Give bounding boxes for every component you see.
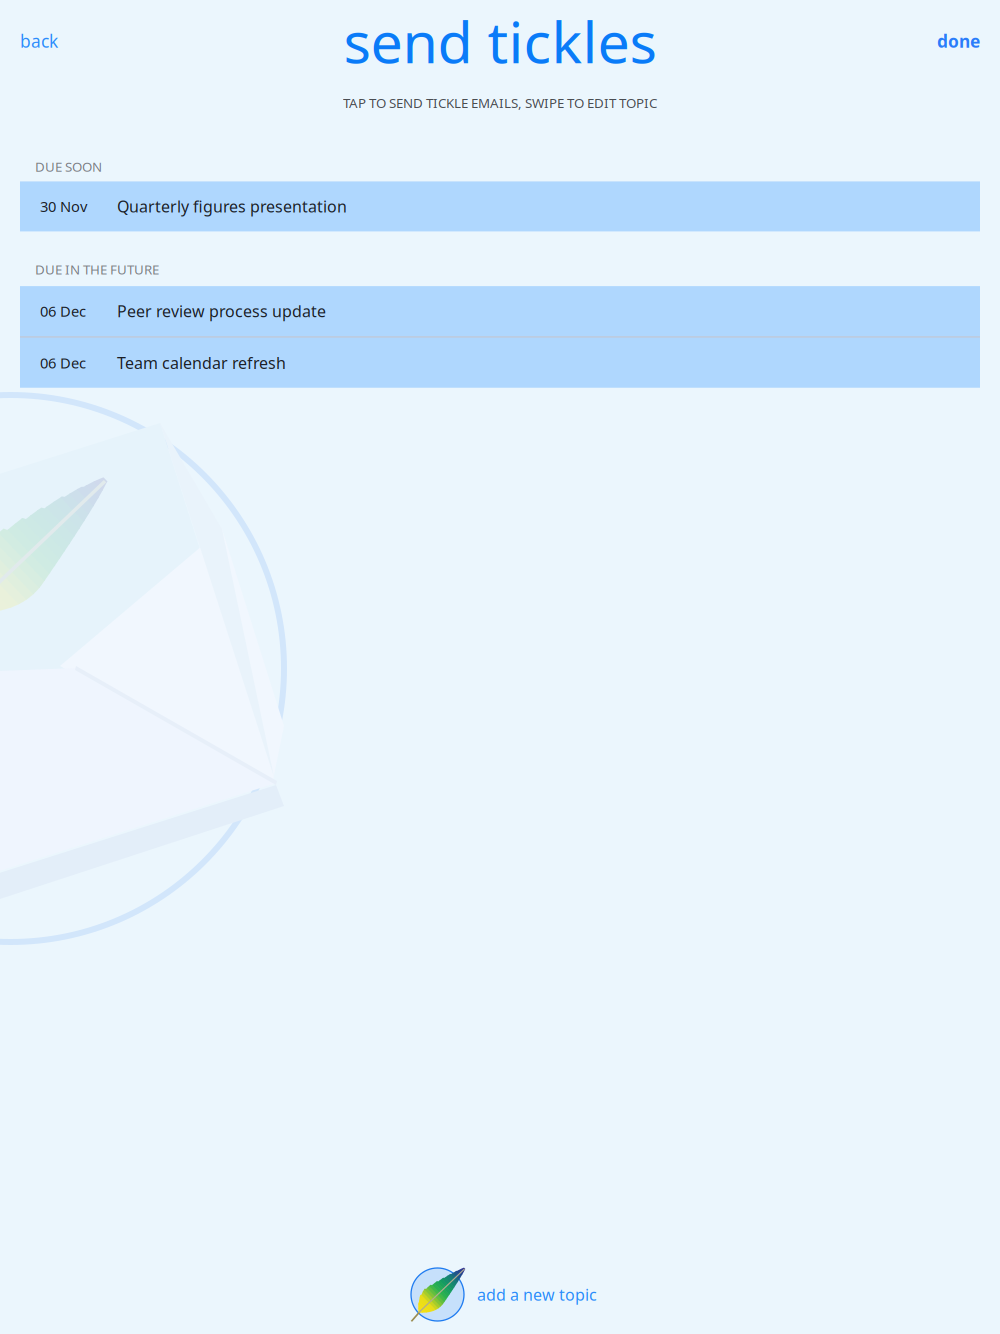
button[interactable]: 30 Nov <box>20 181 980 231</box>
staticText: DUE IN THE FUTURE <box>35 260 159 278</box>
staticText: 30 Nov <box>40 197 87 216</box>
staticText: Team calendar refresh <box>117 352 286 373</box>
button[interactable]: done <box>921 15 1000 66</box>
staticText: Peer review process update <box>117 300 326 322</box>
button[interactable]: back <box>0 15 74 66</box>
button[interactable]: 06 Dec <box>20 338 980 388</box>
staticText: done <box>937 29 980 52</box>
button[interactable]: add a new topic <box>403 1262 597 1327</box>
staticText: TAP TO SEND TICKLE EMAILS, SWIPE TO EDIT… <box>343 94 657 112</box>
staticText: add a new topic <box>477 1284 597 1305</box>
staticText: send tickles <box>343 3 656 79</box>
staticText: Quarterly figures presentation <box>117 196 347 217</box>
staticText: 06 Dec <box>40 353 86 372</box>
staticText: back <box>20 29 58 52</box>
staticText: DUE SOON <box>35 158 102 175</box>
button[interactable]: 06 Dec <box>20 286 980 336</box>
staticText: 06 Dec <box>40 301 86 321</box>
